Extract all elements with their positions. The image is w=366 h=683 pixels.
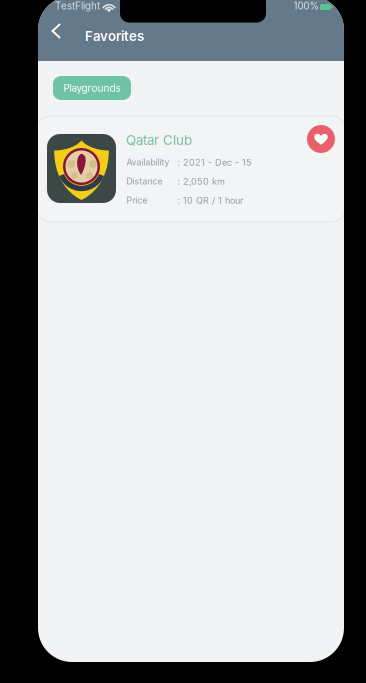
staticText: 2021 - Dec - 15 [183, 157, 252, 168]
staticText: : [177, 195, 180, 206]
staticText: TestFlight [55, 0, 100, 12]
button[interactable]: Playgrounds [53, 76, 131, 100]
staticText: Favorites [85, 28, 144, 44]
button[interactable]: Back [39, 14, 73, 48]
staticText: : [177, 157, 180, 168]
staticText: Price [126, 195, 147, 205]
staticText: 100% [293, 0, 319, 12]
staticText: 10 QR / 1 hour [183, 195, 243, 206]
staticText: Availability [126, 157, 169, 167]
staticText: Playgrounds [63, 82, 120, 94]
staticText: Qatar Club [126, 132, 192, 148]
button[interactable]: Remove from favorites [303, 121, 339, 157]
staticText: 2,050 km [183, 176, 225, 187]
staticText: : [177, 176, 180, 187]
staticText: Distance [126, 176, 162, 186]
